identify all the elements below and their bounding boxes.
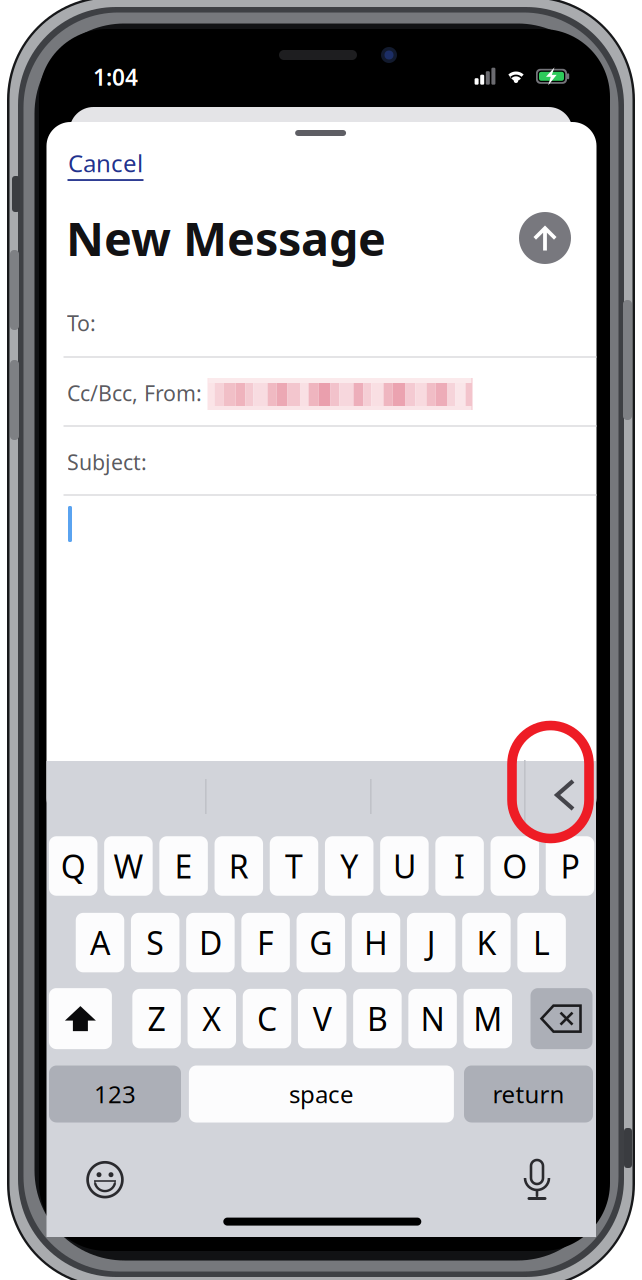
button[interactable]: E bbox=[159, 836, 208, 896]
staticText: New Message bbox=[66, 207, 386, 269]
button[interactable]: Emoji keyboard bbox=[77, 1152, 133, 1208]
staticText: N bbox=[421, 997, 445, 1040]
staticText: H bbox=[364, 921, 388, 964]
staticText: I bbox=[454, 845, 465, 887]
button[interactable]: V bbox=[298, 989, 346, 1048]
staticText: B bbox=[367, 997, 388, 1040]
button[interactable]: Shift bbox=[49, 988, 112, 1049]
button[interactable]: Delete bbox=[530, 988, 592, 1049]
button[interactable]: T bbox=[270, 836, 318, 896]
button[interactable]: Y bbox=[325, 836, 373, 896]
button[interactable]: L bbox=[517, 913, 566, 972]
button[interactable]: J bbox=[407, 913, 455, 972]
staticText: A bbox=[90, 921, 110, 964]
staticText: P bbox=[560, 845, 579, 887]
button[interactable]: I bbox=[435, 836, 484, 896]
button[interactable]: A bbox=[76, 913, 124, 972]
button[interactable]: X bbox=[188, 989, 236, 1048]
staticText: Y bbox=[340, 845, 358, 887]
button[interactable]: G bbox=[297, 913, 345, 972]
button[interactable]: K bbox=[462, 913, 511, 972]
staticText: M bbox=[473, 997, 502, 1040]
staticText: space bbox=[289, 1078, 354, 1110]
button[interactable]: 123 bbox=[49, 1065, 181, 1122]
staticText: Cancel bbox=[68, 147, 143, 179]
staticText: T bbox=[285, 845, 303, 887]
staticText: S bbox=[146, 921, 164, 964]
staticText: E bbox=[175, 845, 193, 887]
button[interactable]: Dictation bbox=[509, 1152, 565, 1208]
button[interactable]: D bbox=[186, 913, 235, 972]
button[interactable]: C bbox=[243, 989, 291, 1048]
staticText: To: bbox=[67, 309, 96, 337]
button[interactable]: Previous field bbox=[528, 758, 598, 830]
button[interactable]: B bbox=[353, 989, 402, 1048]
staticText: R bbox=[229, 845, 249, 887]
staticText: Subject: bbox=[67, 448, 147, 476]
staticText: Z bbox=[148, 997, 166, 1040]
button[interactable]: return bbox=[464, 1065, 593, 1122]
staticText: Q bbox=[61, 845, 86, 887]
button[interactable]: O bbox=[491, 836, 539, 896]
staticText: U bbox=[393, 845, 416, 887]
button[interactable]: W bbox=[104, 836, 153, 896]
staticText: K bbox=[476, 921, 496, 964]
button[interactable]: Q bbox=[49, 836, 97, 896]
button[interactable]: Z bbox=[132, 989, 181, 1048]
staticText: G bbox=[309, 921, 332, 964]
staticText: F bbox=[257, 921, 274, 964]
button[interactable]: F bbox=[241, 913, 290, 972]
staticText: L bbox=[533, 921, 550, 964]
staticText: 1:04 bbox=[93, 62, 138, 92]
staticText: J bbox=[427, 921, 436, 964]
staticText: X bbox=[202, 997, 221, 1040]
button[interactable]: P bbox=[546, 836, 594, 896]
staticText: return bbox=[492, 1078, 564, 1110]
staticText: O bbox=[502, 845, 527, 887]
button[interactable]: R bbox=[215, 836, 263, 896]
staticText: W bbox=[113, 845, 143, 887]
button[interactable]: M bbox=[464, 989, 512, 1048]
button[interactable]: H bbox=[352, 913, 400, 972]
button[interactable]: space bbox=[189, 1065, 454, 1122]
staticText: D bbox=[199, 921, 222, 964]
staticText: Cc/Bcc, From: bbox=[67, 379, 202, 407]
button[interactable]: N bbox=[408, 989, 457, 1048]
staticText: C bbox=[257, 997, 277, 1040]
button[interactable]: Cancel bbox=[68, 147, 228, 179]
button[interactable]: U bbox=[380, 836, 429, 896]
button[interactable]: S bbox=[131, 913, 179, 972]
button[interactable]: Send bbox=[519, 212, 571, 264]
staticText: 123 bbox=[94, 1078, 136, 1110]
staticText: V bbox=[313, 997, 332, 1040]
